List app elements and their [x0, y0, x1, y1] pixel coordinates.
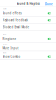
staticText: Done	[45, 2, 53, 6]
staticText: Ringtone	[3, 37, 17, 41]
staticText: Show Combo	[3, 55, 21, 58]
button[interactable]: Blocked Email Mode	[0, 24, 56, 30]
button[interactable]: Sound effects	[0, 10, 56, 17]
staticText: Keyboard feedback	[3, 18, 28, 22]
staticText: Memos	[3, 43, 8, 45]
staticText: Audio	[3, 8, 7, 10]
staticText: Music	[3, 52, 7, 54]
button[interactable]: Ringtone	[0, 36, 56, 42]
button[interactable]: Mute Input	[0, 45, 56, 51]
staticText: Music	[3, 33, 7, 35]
button[interactable]: Show Combo	[0, 54, 56, 59]
button[interactable]: Keyboard feedback	[0, 17, 56, 23]
staticText: Sound effects	[3, 11, 22, 15]
button[interactable]: Done	[44, 2, 54, 6]
staticText: Sound & Haptics	[16, 2, 39, 6]
staticText: Blocked Email Mode	[3, 25, 30, 29]
staticText: Mute Input	[3, 46, 19, 50]
